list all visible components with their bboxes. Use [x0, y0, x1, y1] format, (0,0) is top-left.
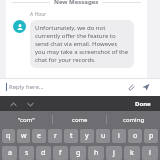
staticText: A Hour	[30, 11, 47, 18]
button[interactable]: Send	[140, 81, 152, 93]
button[interactable]: p	[144, 129, 158, 143]
button[interactable]: coming	[107, 111, 160, 128]
staticText: g	[76, 148, 81, 158]
button[interactable]: f	[53, 146, 68, 160]
staticText: e	[37, 131, 41, 141]
staticText: h	[94, 148, 99, 158]
staticText: f	[59, 148, 62, 158]
staticText: New Messages	[54, 0, 99, 6]
button[interactable]: q	[2, 129, 15, 143]
button[interactable]: k	[124, 146, 140, 160]
button[interactable]: g	[70, 146, 86, 160]
staticText: u	[101, 131, 106, 141]
staticText: a	[8, 148, 12, 158]
staticText: Unfortunately, we do not currently offer…	[35, 24, 129, 64]
button[interactable]: s	[19, 146, 34, 160]
button[interactable]: a	[2, 146, 17, 160]
button[interactable]: j	[106, 146, 122, 160]
button[interactable]: come	[53, 111, 106, 128]
staticText: o	[133, 131, 138, 141]
staticText: p	[149, 131, 154, 141]
staticText: w	[21, 131, 27, 141]
staticText: k	[130, 148, 134, 158]
button[interactable]: o	[128, 129, 142, 143]
staticText: j	[113, 148, 115, 158]
button[interactable]: t	[64, 129, 78, 143]
button[interactable]: e	[32, 129, 46, 143]
button[interactable]: Attach file	[125, 81, 137, 93]
staticText: come	[72, 116, 88, 124]
button[interactable]: Unfortunately, we do not currently offer…	[30, 20, 134, 68]
button[interactable]: r	[48, 129, 62, 143]
staticText: i	[118, 131, 120, 141]
button[interactable]: Next field	[24, 98, 36, 110]
staticText: d	[41, 148, 46, 158]
staticText: r	[54, 131, 57, 141]
button[interactable]: y	[80, 129, 94, 143]
button[interactable]: d	[36, 146, 51, 160]
button[interactable]: u	[96, 129, 110, 143]
staticText: Reply here...	[9, 83, 44, 91]
button[interactable]: Reply here...	[9, 83, 125, 91]
button[interactable]: "com"	[0, 111, 52, 128]
button[interactable]: i	[112, 129, 126, 143]
button[interactable]: h	[88, 146, 104, 160]
staticText: q	[6, 131, 11, 141]
staticText: y	[85, 131, 89, 141]
staticText: "com"	[18, 116, 35, 124]
button[interactable]: Done	[133, 98, 153, 110]
staticText: t	[70, 131, 73, 141]
button[interactable]: Previous field	[7, 98, 19, 110]
staticText: Done	[135, 100, 151, 108]
staticText: l	[149, 148, 151, 158]
staticText: s	[25, 148, 29, 158]
button[interactable]: l	[142, 146, 158, 160]
button[interactable]: w	[17, 129, 30, 143]
staticText: coming	[123, 116, 145, 124]
